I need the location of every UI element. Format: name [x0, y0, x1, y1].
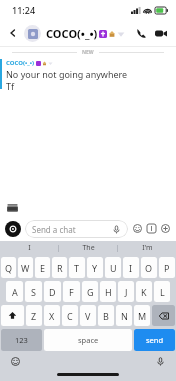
button[interactable]: M — [134, 305, 150, 326]
staticText: H — [105, 286, 112, 298]
button[interactable]: Video call — [151, 23, 171, 43]
button[interactable]: D — [44, 281, 61, 302]
button[interactable]: The — [59, 241, 117, 255]
button[interactable]: B — [98, 305, 114, 326]
staticText: COCO(•_•) — [6, 59, 35, 67]
staticText: K — [141, 286, 147, 298]
staticText: D — [49, 286, 56, 298]
staticText: R — [57, 262, 63, 274]
staticText: Q — [5, 262, 13, 274]
button[interactable]: U — [105, 257, 121, 278]
staticText: 123 — [15, 335, 28, 345]
button[interactable]: Emoji keyboard — [10, 356, 21, 367]
staticText: I — [129, 262, 133, 274]
button[interactable]: X — [44, 305, 60, 326]
staticText: L — [160, 286, 165, 298]
staticText: The — [82, 243, 95, 253]
staticText: Send a chat — [32, 224, 112, 235]
button[interactable]: space — [44, 329, 132, 351]
staticText: S — [31, 286, 36, 298]
staticText: M — [138, 310, 147, 322]
button[interactable]: V — [80, 305, 96, 326]
staticText: No your not going anywhere — [6, 68, 128, 80]
staticText: N — [121, 310, 128, 322]
staticText: F — [69, 286, 74, 298]
staticText: Z — [31, 310, 37, 322]
staticText: T — [74, 262, 80, 274]
staticText: Tf — [6, 80, 15, 92]
staticText: P — [164, 262, 170, 274]
button[interactable]: J — [118, 281, 134, 302]
button[interactable]: Voice note — [112, 225, 121, 234]
button[interactable]: E — [35, 257, 50, 278]
staticText: NEW — [82, 49, 94, 56]
button[interactable]: T — [69, 257, 85, 278]
button[interactable]: P — [159, 257, 175, 278]
button[interactable]: Emoji — [132, 223, 143, 234]
staticText: 11:24 — [12, 4, 36, 16]
staticText: C — [67, 310, 73, 322]
button[interactable]: Q — [1, 257, 16, 278]
button[interactable]: K — [136, 281, 152, 302]
staticText: U — [110, 262, 117, 274]
button[interactable]: W — [18, 257, 33, 278]
button[interactable]: Y — [87, 257, 103, 278]
button[interactable]: Send a chat — [25, 220, 128, 238]
button[interactable]: Profile — [24, 25, 41, 42]
staticText: COCO(•_•) — [46, 26, 98, 41]
button[interactable]: I — [123, 257, 139, 278]
button[interactable]: 123 — [1, 329, 42, 351]
staticText: space — [78, 335, 99, 345]
staticText: G — [87, 286, 94, 298]
staticText: W — [21, 262, 30, 274]
button[interactable]: R — [52, 257, 67, 278]
button[interactable]: Stickers — [146, 223, 157, 234]
button[interactable]: Backspace — [152, 305, 175, 326]
staticText: V — [85, 310, 91, 322]
button[interactable]: Z — [26, 305, 42, 326]
button[interactable]: O — [141, 257, 157, 278]
button[interactable]: send — [134, 329, 175, 351]
staticText: send — [146, 335, 164, 345]
button[interactable]: C — [62, 305, 78, 326]
button[interactable]: A — [6, 281, 23, 302]
button[interactable]: I'm — [118, 241, 176, 255]
button[interactable]: F — [63, 281, 80, 302]
staticText: E — [40, 262, 46, 274]
button[interactable]: G — [82, 281, 98, 302]
button[interactable]: Voice call — [131, 23, 151, 43]
button[interactable]: N — [116, 305, 132, 326]
button[interactable]: Voice input — [155, 356, 166, 367]
button[interactable]: H — [100, 281, 116, 302]
staticText: B — [103, 310, 109, 322]
button[interactable]: Shift — [1, 305, 24, 326]
staticText: X — [49, 310, 55, 322]
button[interactable]: I — [0, 241, 58, 255]
staticText: I — [28, 243, 31, 253]
staticText: J — [125, 286, 128, 298]
staticText: A — [12, 286, 18, 298]
button[interactable]: More — [160, 223, 171, 234]
button[interactable]: L — [154, 281, 170, 302]
staticText: O — [145, 262, 153, 274]
staticText: Y — [92, 262, 98, 274]
button[interactable]: S — [25, 281, 42, 302]
button[interactable]: Camera — [5, 221, 21, 237]
staticText: I'm — [142, 243, 153, 253]
button[interactable]: Back — [5, 25, 21, 41]
